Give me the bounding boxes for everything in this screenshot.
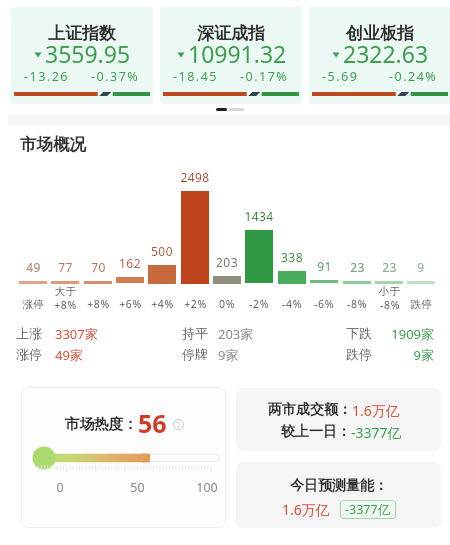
staticText: -0.24% — [389, 68, 438, 85]
staticText: 77 — [58, 259, 73, 275]
staticText: 涨停 — [16, 346, 42, 362]
button[interactable]: 下跌 — [342, 324, 438, 342]
staticText: 23 — [350, 259, 365, 275]
button[interactable]: 上证指数 — [11, 7, 153, 104]
staticText: 大于 — [54, 285, 77, 298]
staticText: -13.26 — [24, 68, 69, 85]
staticText: -5.69 — [322, 68, 359, 85]
staticText: 500 — [151, 243, 173, 259]
staticText: 100 — [196, 479, 218, 496]
button[interactable]: 停牌 — [178, 345, 204, 363]
button[interactable]: 今日预测量能： — [236, 462, 441, 528]
staticText: +8% — [87, 297, 110, 311]
staticText: 深证成指 — [197, 23, 265, 44]
staticText: -8% — [380, 298, 400, 311]
staticText: +2% — [184, 297, 207, 311]
staticText: 49家 — [55, 346, 83, 364]
staticText: 今日预测量能： — [290, 477, 388, 495]
staticText: 23 — [382, 259, 397, 275]
staticText: -0.37% — [91, 68, 140, 85]
staticText: 91 — [317, 258, 332, 274]
staticText: 上证指数 — [48, 23, 116, 44]
staticText: -3377亿 — [345, 501, 391, 518]
staticText: -18.45 — [173, 68, 218, 85]
staticText: 持平 — [182, 325, 208, 341]
button[interactable]: 涨停 — [12, 345, 40, 363]
staticText: 小于 — [378, 285, 401, 298]
staticText: 0 — [56, 479, 64, 496]
button[interactable]: 跌停 — [342, 345, 438, 363]
staticText: 1.6万亿 — [352, 401, 400, 420]
staticText: 10991.32 — [188, 38, 287, 69]
button[interactable]: 持平 — [178, 324, 214, 342]
staticText: 较上一日： — [281, 423, 351, 441]
staticText: 338 — [281, 249, 303, 265]
staticText: +6% — [119, 297, 142, 311]
staticText: 市场概况 — [20, 134, 86, 155]
staticText: +8% — [54, 298, 77, 311]
button[interactable]: 深证成指 — [160, 7, 302, 104]
staticText: 市场热度： — [65, 415, 138, 433]
staticText: 49 — [26, 259, 41, 275]
staticText: 3559.95 — [45, 38, 131, 69]
staticText: -2% — [249, 297, 269, 311]
staticText: 70 — [91, 259, 106, 275]
staticText: 50 — [130, 479, 145, 496]
staticText: 1909家 — [391, 325, 434, 343]
staticText: 下跌 — [346, 325, 372, 341]
staticText: 1.6万亿 — [282, 500, 330, 519]
staticText: 162 — [119, 255, 141, 271]
staticText: -8% — [347, 297, 367, 311]
staticText: -3377亿 — [351, 423, 402, 442]
staticText: 9家 — [218, 346, 239, 364]
button[interactable]: 创业板指 — [309, 7, 450, 104]
staticText: 上涨 — [16, 325, 42, 341]
staticText: 0% — [219, 297, 235, 311]
staticText: 跌停 — [346, 346, 372, 362]
staticText: -6% — [314, 297, 334, 311]
staticText: 2498 — [180, 169, 210, 185]
staticText: 1434 — [244, 208, 274, 224]
staticText: 9 — [417, 259, 425, 275]
button[interactable]: 两市成交额： — [236, 388, 441, 451]
button[interactable]: 上涨 — [12, 324, 55, 342]
staticText: 203 — [216, 254, 238, 270]
staticText: 2322.63 — [343, 38, 429, 69]
staticText: 203家 — [218, 325, 254, 343]
staticText: -0.17% — [240, 68, 289, 85]
staticText: +4% — [151, 297, 174, 311]
staticText: 两市成交额： — [268, 401, 352, 419]
button[interactable]: 市场热度： — [21, 387, 226, 528]
staticText: 56 — [138, 406, 167, 440]
staticText: 停牌 — [182, 346, 208, 362]
staticText: -4% — [282, 297, 302, 311]
staticText: 跌停 — [410, 298, 433, 311]
staticText: 3307家 — [55, 325, 98, 343]
staticText: 涨停 — [22, 298, 45, 311]
staticText: 9家 — [413, 346, 434, 364]
staticText: 创业板指 — [346, 23, 414, 44]
